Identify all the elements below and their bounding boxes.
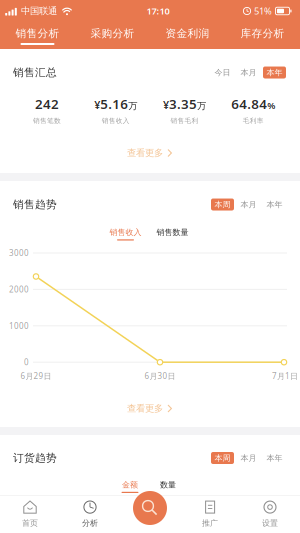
button[interactable]: 查看更多 (0, 400, 300, 416)
staticText: 库存分析 (240, 27, 284, 40)
staticText: 数量 (160, 480, 176, 490)
staticText: 首页 (22, 518, 38, 528)
button[interactable]: 销售数量 (153, 223, 191, 245)
button[interactable]: 本年 (263, 66, 286, 78)
staticText: 销售汇总 (13, 66, 57, 79)
staticText: 1000 (9, 320, 29, 331)
staticText: 查看更多 (127, 403, 163, 414)
button[interactable]: 搜索 (133, 491, 167, 525)
staticText: 2000 (9, 284, 29, 295)
staticText: 0 (24, 357, 29, 367)
staticText: 推广 (202, 518, 218, 528)
staticText: 本周 (214, 200, 230, 209)
staticText: 金额 (122, 480, 138, 490)
button[interactable]: 本月 (237, 198, 260, 210)
button[interactable]: 分析 (60, 495, 120, 533)
staticText: ¥ (94, 98, 100, 112)
button[interactable]: 采购分析 (75, 22, 150, 49)
button[interactable]: 本月 (237, 452, 260, 464)
staticText: 3000 (9, 248, 29, 258)
staticText: 6月29日 (20, 371, 51, 381)
staticText: 3.35 (169, 95, 197, 113)
staticText: 销售收入 (109, 227, 141, 237)
staticText: 分析 (82, 518, 98, 528)
staticText: 销售分析 (15, 27, 59, 40)
button[interactable]: 本周 (211, 198, 234, 210)
button[interactable]: 推广 (180, 495, 240, 533)
staticText: 242 (35, 95, 59, 113)
staticText: 51% (254, 5, 272, 17)
button[interactable]: 资金利润 (150, 22, 225, 49)
staticText: 销售数量 (156, 227, 188, 237)
button[interactable]: 查看更多 (0, 145, 300, 161)
staticText: 本月 (240, 453, 256, 463)
button[interactable]: 设置 (240, 495, 300, 533)
staticText: 销售收入 (102, 117, 130, 125)
staticText: 今日 (214, 68, 230, 77)
staticText: 7月1日 (272, 371, 298, 381)
button[interactable]: 首页 (0, 495, 60, 533)
staticText: 5.16 (100, 95, 128, 113)
staticText: 销售毛利 (170, 117, 198, 125)
button[interactable]: 数量 (156, 475, 179, 497)
staticText: 资金利润 (165, 27, 209, 40)
button[interactable]: 本周 (211, 452, 234, 464)
button[interactable]: 本年 (263, 452, 286, 464)
staticText: 设置 (262, 518, 278, 528)
staticText: 销售笔数 (33, 117, 61, 125)
staticText: 万 (128, 100, 137, 112)
button[interactable]: 库存分析 (225, 22, 300, 49)
staticText: 64.84 (231, 95, 267, 113)
staticText: 本周 (214, 453, 230, 463)
staticText: 本年 (266, 200, 282, 209)
staticText: 本月 (240, 68, 256, 77)
button[interactable]: 销售收入 (106, 223, 144, 245)
staticText: ¥ (163, 98, 169, 112)
staticText: 本年 (266, 453, 282, 463)
button[interactable]: 销售分析 (0, 22, 75, 49)
staticText: 中国联通 (21, 5, 57, 17)
staticText: 本月 (240, 200, 256, 209)
button[interactable]: 今日 (211, 66, 234, 78)
staticText: 17:10 (146, 5, 169, 17)
button[interactable]: 金额 (118, 475, 141, 497)
staticText: 本年 (266, 68, 282, 77)
staticText: 毛利率 (243, 117, 264, 125)
staticText: 万 (197, 100, 206, 112)
staticText: 销售趋势 (13, 198, 57, 211)
staticText: 采购分析 (90, 27, 134, 40)
button[interactable]: 本年 (263, 198, 286, 210)
staticText: 查看更多 (127, 147, 163, 159)
button[interactable]: 本月 (237, 66, 260, 78)
staticText: 订货趋势 (13, 451, 57, 464)
staticText: 6月30日 (144, 371, 175, 381)
staticText: % (267, 99, 275, 112)
